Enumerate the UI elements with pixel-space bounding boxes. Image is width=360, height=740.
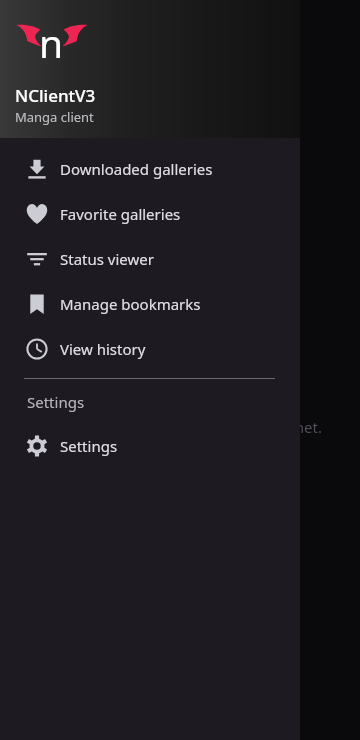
staticText: Favorite galleries [60,204,181,224]
staticText: View history [60,339,146,359]
other: Downloaded galleries [25,157,49,181]
button[interactable]: View history [0,326,300,371]
staticText: There is no internet. [180,417,322,437]
staticText: NClientV3 [15,84,96,107]
staticText: Manage bookmarks [60,294,201,314]
button[interactable]: Favorite galleries [0,191,300,236]
staticText: Settings [27,392,85,412]
staticText: Status viewer [60,249,154,269]
staticText: Downloaded galleries [60,159,213,179]
button[interactable]: Downloaded galleries [0,146,300,191]
button[interactable]: Settings [0,423,300,468]
button[interactable]: Manage bookmarks [0,281,300,326]
staticText: n [39,16,64,69]
button[interactable]: Status viewer [0,236,300,281]
staticText: Manga client [15,108,94,126]
staticText: Settings [60,436,118,456]
